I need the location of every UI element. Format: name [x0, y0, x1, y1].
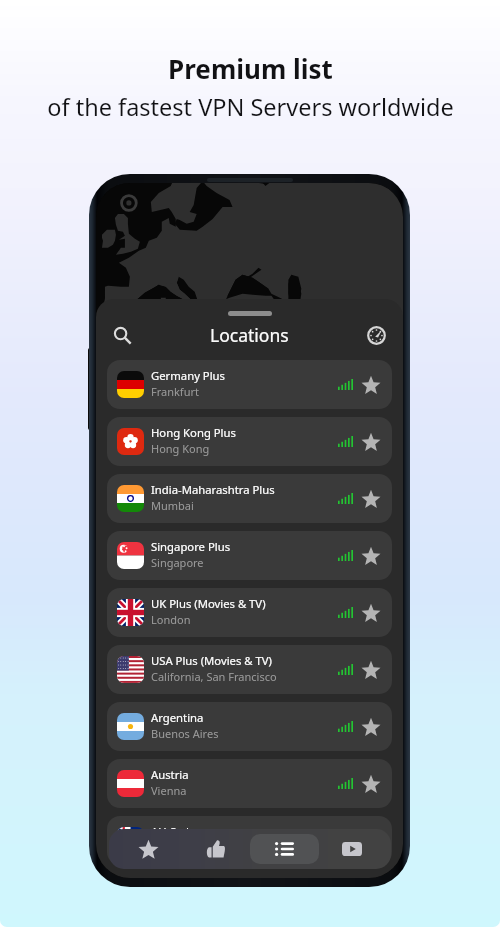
staticText: Premium list [168, 51, 333, 86]
staticText: Hong Kong [151, 441, 210, 456]
staticText: UK Plus (Movies & TV) [151, 596, 266, 611]
button[interactable]: AU-Sydney [107, 816, 392, 865]
staticText: London [151, 612, 191, 627]
staticText: Singapore Plus [151, 539, 231, 554]
button[interactable]: All locations [250, 834, 319, 864]
staticText: India-Maharashtra Plus [151, 482, 275, 497]
staticText: Mumbai [151, 498, 194, 513]
staticText: Sydney [151, 840, 188, 855]
button[interactable]: Germany Plus [107, 360, 392, 409]
button[interactable]: Speed test [359, 318, 393, 352]
staticText: AU-Sydney [151, 824, 208, 839]
staticText: Frankfurt [151, 384, 199, 399]
button[interactable]: Argentina [107, 702, 392, 751]
button[interactable]: Singapore Plus [107, 531, 392, 580]
button[interactable]: Favourites [133, 832, 163, 866]
staticText: Vienna [151, 783, 187, 798]
staticText: Argentina [151, 710, 204, 725]
button[interactable]: Austria [107, 759, 392, 808]
button[interactable]: Recommended [202, 832, 230, 866]
button[interactable]: Hong Kong Plus [107, 417, 392, 466]
staticText: Singapore [151, 555, 204, 570]
staticText: Germany Plus [151, 368, 225, 383]
button[interactable]: Search [105, 318, 139, 352]
staticText: Austria [151, 767, 189, 782]
staticText: Buenos Aires [151, 726, 219, 741]
button[interactable]: India-Maharashtra Plus [107, 474, 392, 523]
button[interactable]: USA Plus (Movies & TV) [107, 645, 392, 694]
button[interactable]: Streaming [338, 832, 366, 866]
button[interactable]: UK Plus (Movies & TV) [107, 588, 392, 637]
staticText: Hong Kong Plus [151, 425, 236, 440]
staticText: USA Plus (Movies & TV) [151, 653, 272, 668]
staticText: of the fastest VPN Servers worldwide [47, 91, 454, 123]
staticText: Locations [210, 323, 289, 347]
staticText: California, San Francisco [151, 669, 277, 684]
